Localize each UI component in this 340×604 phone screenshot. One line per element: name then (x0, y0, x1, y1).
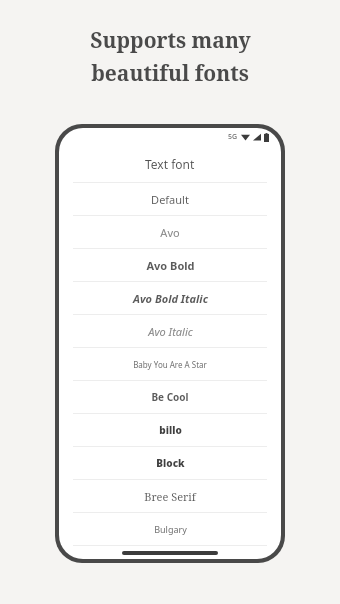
button[interactable]: Avo Italic (59, 315, 281, 347)
staticText: Default (151, 192, 189, 207)
staticText: Be Cool (151, 390, 189, 404)
staticText: beautiful fonts (91, 59, 249, 88)
staticText: Bree Serif (144, 489, 196, 504)
button[interactable]: Avo (59, 216, 281, 248)
staticText: Bulgary (154, 523, 187, 535)
other: Wi-Fi (241, 133, 250, 141)
button[interactable]: Bulgary (59, 513, 281, 545)
staticText: Avo Bold Italic (133, 291, 208, 306)
staticText: Avo Italic (148, 324, 193, 339)
staticText: billo (159, 423, 182, 437)
button[interactable]: Baby You Are A Star (59, 348, 281, 380)
staticText: Supports many (90, 26, 251, 55)
button[interactable]: Bree Serif (59, 480, 281, 512)
button[interactable]: Be Cool (59, 381, 281, 413)
button[interactable]: Default (59, 183, 281, 215)
staticText: 5G (228, 132, 238, 142)
button[interactable]: Block (59, 447, 281, 479)
staticText: Avo Bold (146, 258, 195, 273)
staticText: Text font (145, 156, 195, 172)
button[interactable]: billo (59, 414, 281, 446)
staticText: Baby You Are A Star (133, 359, 207, 370)
other: Battery (264, 133, 269, 142)
button[interactable]: Avo Bold Italic (59, 282, 281, 314)
staticText: Avo (160, 225, 180, 240)
staticText: Block (156, 456, 185, 470)
other: Cellular signal (253, 133, 261, 141)
button[interactable]: Avo Bold (59, 249, 281, 281)
